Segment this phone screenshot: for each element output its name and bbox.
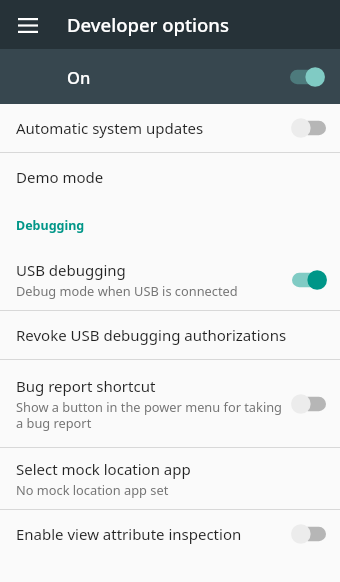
button[interactable]: USB debugging (0, 249, 340, 310)
staticText: No mock location app set (16, 481, 169, 498)
button[interactable]: Enable view attribute inspection (0, 510, 340, 558)
staticText: Show a button in the power menu for taki… (16, 398, 282, 431)
button[interactable]: Automatic system updates (0, 104, 340, 152)
staticText: Enable view attribute inspection (16, 524, 242, 544)
staticText: Debug mode when USB is connected (16, 282, 238, 299)
button[interactable]: On (0, 49, 340, 104)
staticText: Debugging (16, 217, 85, 234)
staticText: Automatic system updates (16, 118, 204, 138)
staticText: USB debugging (16, 260, 126, 280)
button[interactable]: Bug report shortcut (0, 360, 340, 447)
staticText: Developer options (67, 12, 229, 37)
button[interactable]: Demo mode (0, 153, 340, 201)
button[interactable]: Revoke USB debugging authorizations (0, 311, 340, 359)
staticText: On (67, 66, 290, 88)
staticText: Revoke USB debugging authorizations (16, 325, 287, 345)
staticText: Select mock location app (16, 459, 191, 479)
staticText: Demo mode (16, 167, 104, 187)
button[interactable]: Select mock location app (0, 448, 340, 509)
staticText: Bug report shortcut (16, 376, 156, 396)
button[interactable]: Open navigation menu (8, 5, 48, 45)
